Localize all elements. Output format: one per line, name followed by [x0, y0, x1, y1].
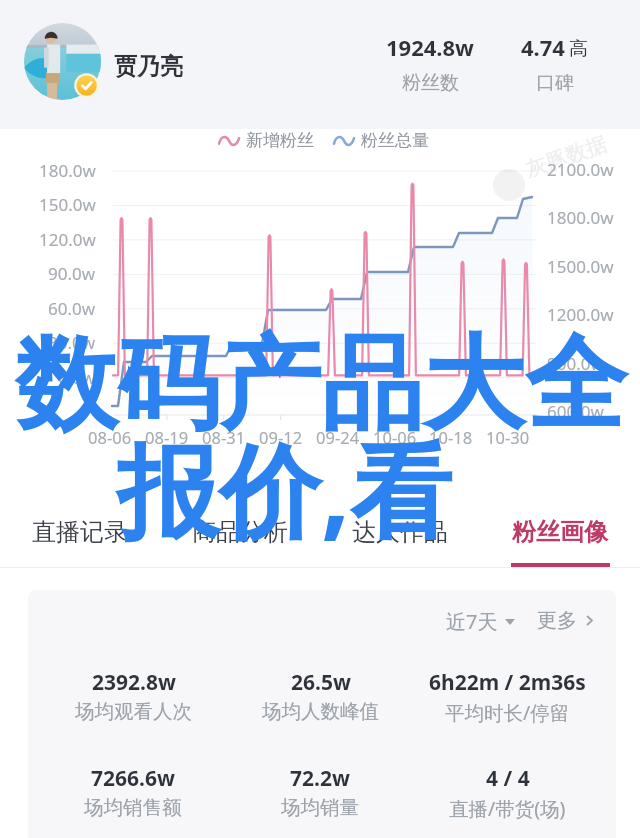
staticText: 09-24	[316, 426, 360, 448]
staticText: 7266.6w	[91, 764, 175, 793]
staticText: 120.0w	[39, 228, 96, 251]
button[interactable]: 26.5w	[220, 668, 420, 724]
button[interactable]: 1924.8w	[360, 32, 500, 95]
staticText: 近7天	[446, 608, 498, 635]
staticText: 600.0w	[547, 400, 604, 423]
button[interactable]: 直播记录	[0, 505, 160, 567]
staticText: 报价,看	[117, 419, 453, 558]
button[interactable]: 4.74	[484, 32, 624, 95]
staticText: 08-06	[88, 426, 132, 448]
staticText: 90.0w	[48, 262, 96, 285]
staticText: 6h22m / 2m36s	[429, 668, 586, 697]
staticText: 09-12	[259, 426, 303, 448]
button[interactable]: 粉丝画像	[480, 505, 640, 567]
staticText: 900.0w	[547, 352, 604, 375]
staticText: 180.0w	[39, 159, 96, 182]
button[interactable]: 7266.6w	[33, 764, 233, 820]
staticText: 08-31	[202, 426, 246, 448]
button[interactable]: 近7天	[440, 603, 521, 640]
staticText: 商品分析	[192, 517, 288, 547]
staticText: 场均销售额	[84, 795, 182, 820]
staticText: 贾乃亮	[114, 52, 183, 81]
button[interactable]: 商品分析	[160, 505, 320, 567]
staticText: 2100.0w	[547, 158, 614, 181]
staticText: 口碑	[536, 71, 574, 95]
button[interactable]: Avatar	[24, 23, 101, 100]
staticText: 数码产品大全	[15, 321, 627, 449]
staticText: 1200.0w	[547, 303, 614, 326]
staticText: 0.0w	[58, 366, 96, 389]
button[interactable]: 4 / 4	[407, 764, 607, 822]
staticText: 1800.0w	[547, 206, 614, 229]
staticText: 场均销量	[281, 795, 359, 820]
staticText: 粉丝总量	[361, 130, 429, 151]
staticText: 灰豚数据	[522, 131, 610, 183]
staticText: 30.0w	[48, 331, 96, 354]
staticText: 60.0w	[48, 297, 96, 320]
staticText: 直播/带货(场)	[449, 795, 566, 822]
button[interactable]: 更多	[531, 603, 598, 638]
staticText: 粉丝数	[402, 71, 459, 95]
staticText: 08-19	[145, 426, 189, 448]
staticText: 72.2w	[290, 764, 350, 793]
staticText: 高	[569, 37, 588, 61]
button[interactable]: 72.2w	[220, 764, 420, 820]
staticText: 直播记录	[32, 517, 128, 547]
staticText: 10-06	[373, 426, 417, 448]
staticText: 新增粉丝	[246, 130, 314, 151]
staticText: 26.5w	[291, 668, 351, 697]
staticText: 达人作品	[352, 517, 448, 547]
staticText: 4 / 4	[486, 764, 530, 793]
staticText: 平均时长/停留	[445, 699, 570, 726]
button[interactable]: 达人作品	[320, 505, 480, 567]
staticText: 1924.8w	[386, 32, 474, 62]
staticText: 10-18	[429, 426, 473, 448]
button[interactable]: 6h22m / 2m36s	[407, 668, 607, 726]
staticText: 4.74	[521, 32, 565, 62]
staticText: 场均观看人次	[75, 699, 192, 724]
staticText: 150.0w	[39, 193, 96, 216]
staticText: 场均人数峰值	[262, 699, 379, 724]
button[interactable]: 2392.8w	[33, 668, 233, 724]
staticText: 粉丝画像	[512, 517, 608, 547]
staticText: 2392.8w	[92, 668, 176, 697]
staticText: 1500.0w	[547, 255, 614, 278]
staticText: 更多	[537, 608, 577, 633]
staticText: 10-30	[486, 426, 530, 448]
